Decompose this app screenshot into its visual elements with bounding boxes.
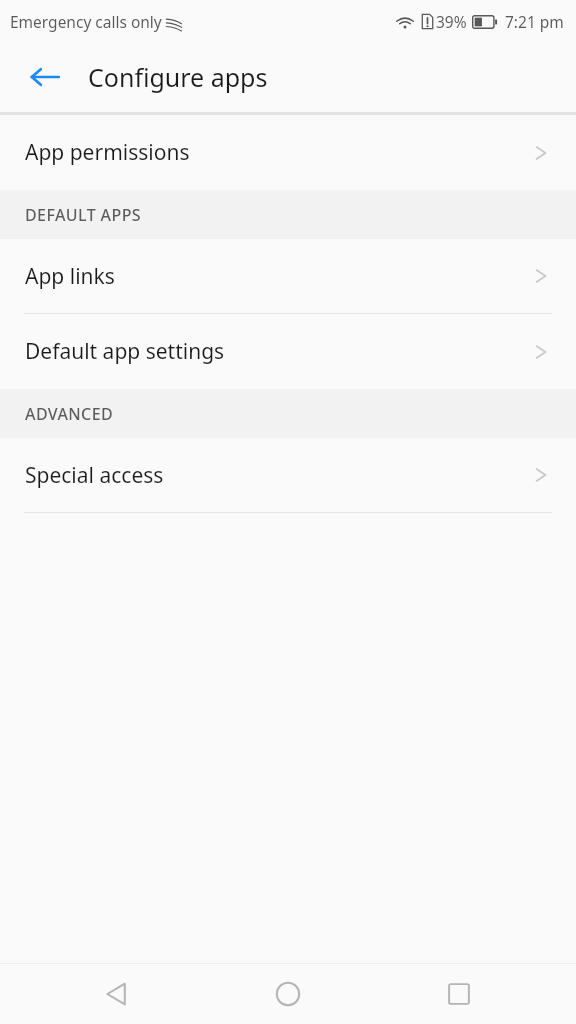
staticText: 39%	[436, 11, 467, 32]
button[interactable]: App links	[0, 239, 576, 313]
button[interactable]: Home	[202, 964, 373, 1024]
staticText: Configure apps	[88, 60, 268, 94]
staticText: 7:21 pm	[505, 11, 564, 32]
button[interactable]: Back	[13, 45, 77, 109]
staticText: Special access	[25, 461, 530, 490]
button[interactable]: Special access	[0, 438, 576, 512]
staticText: DEFAULT APPS	[25, 204, 142, 226]
button[interactable]: Recent apps	[373, 964, 544, 1024]
button[interactable]: Default app settings	[0, 314, 576, 389]
staticText: Default app settings	[25, 337, 530, 366]
staticText: App links	[25, 262, 530, 291]
button[interactable]: Back	[32, 964, 202, 1024]
staticText: ADVANCED	[25, 403, 114, 425]
staticText: Emergency calls only	[10, 11, 162, 32]
button[interactable]: App permissions	[0, 115, 576, 190]
staticText: App permissions	[25, 138, 530, 167]
